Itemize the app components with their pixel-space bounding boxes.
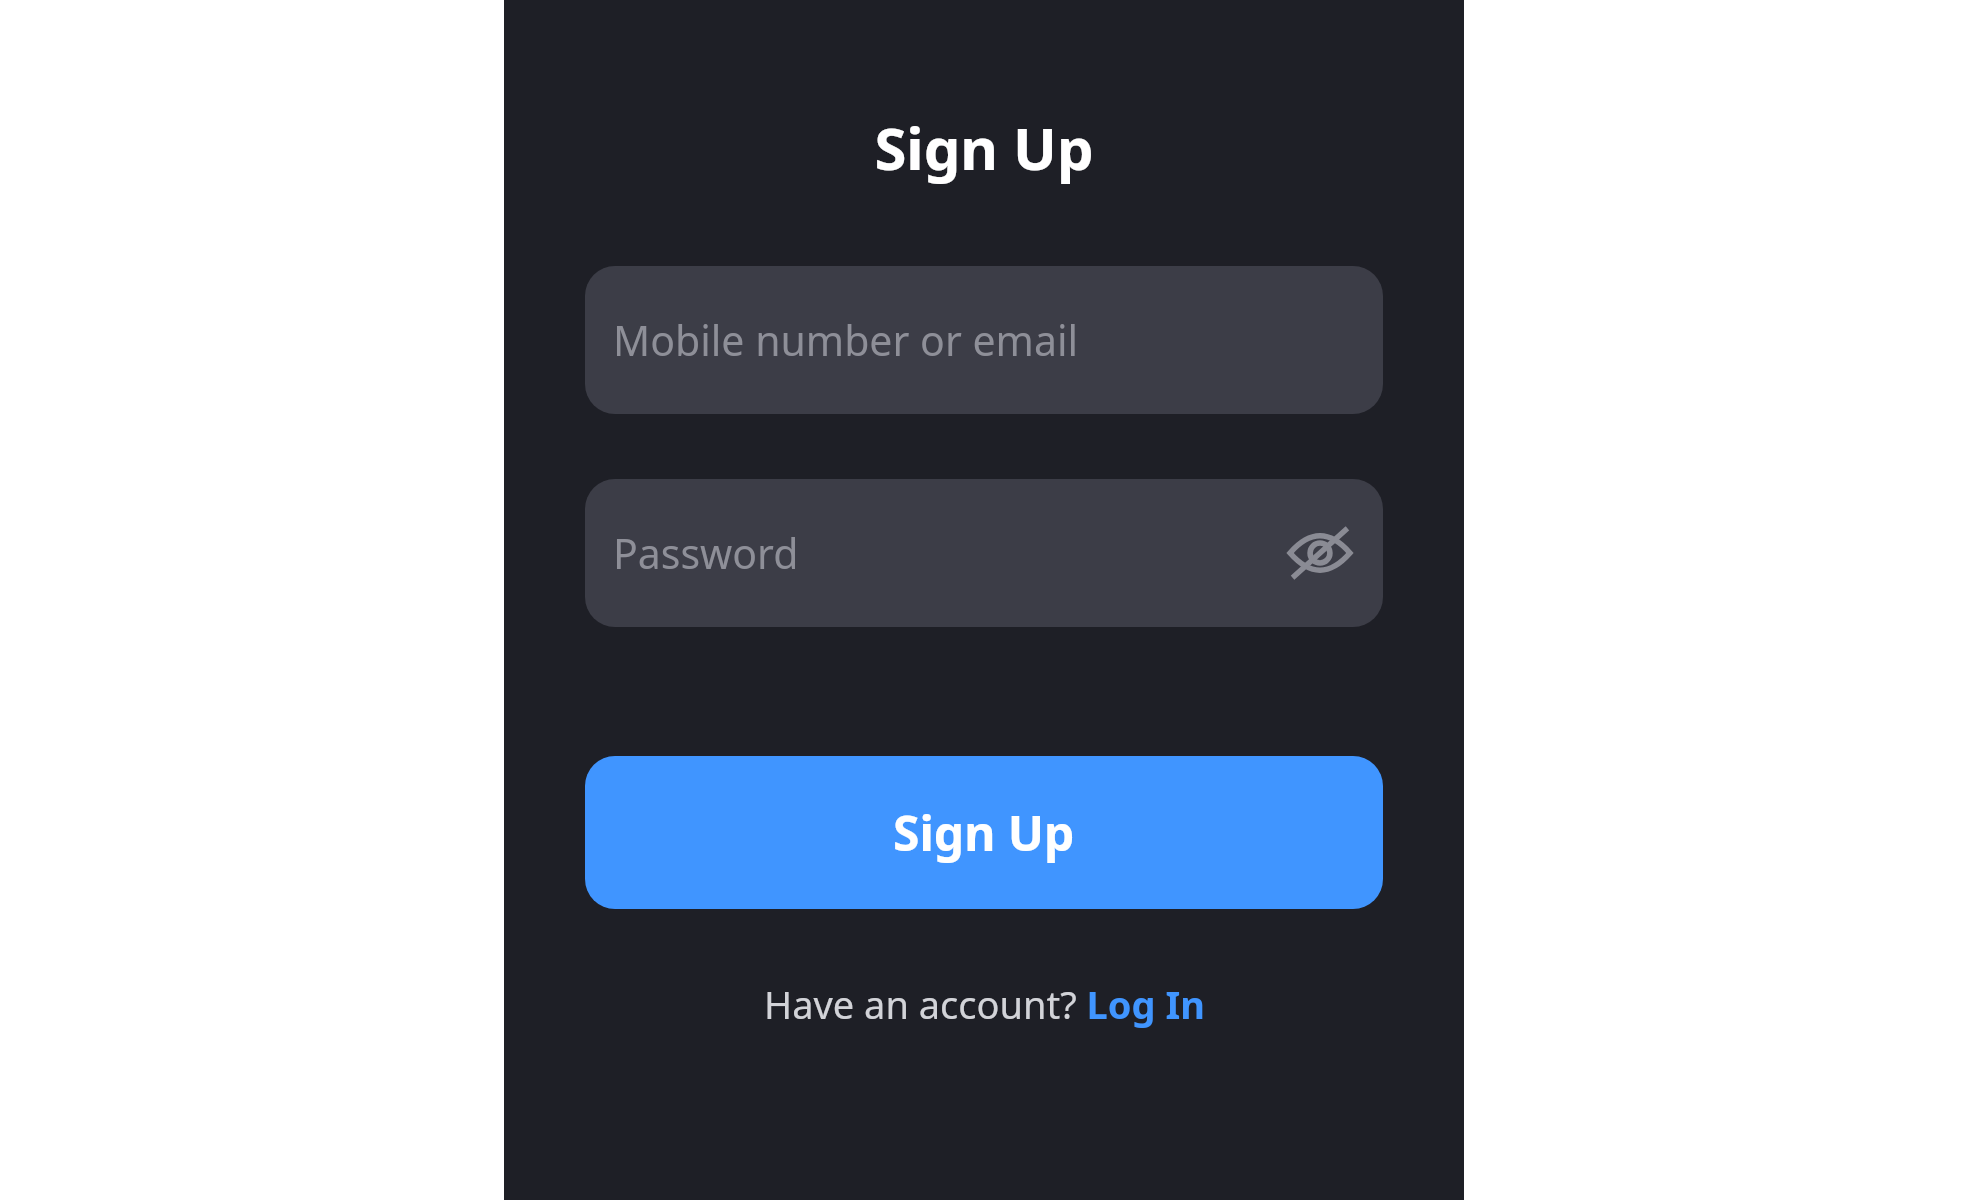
staticText: Mobile number or email [613, 312, 1079, 368]
staticText: Have an account? Log In [764, 978, 1205, 1030]
staticText: Password [613, 525, 799, 581]
button[interactable]: Password [585, 479, 1383, 627]
button[interactable]: Mobile number or email [585, 266, 1383, 414]
staticText: Sign Up [893, 800, 1075, 865]
button[interactable]: Show password [1283, 516, 1357, 590]
button[interactable]: Have an account? Log In [752, 972, 1217, 1036]
button[interactable]: Sign Up [585, 756, 1383, 909]
staticText: Sign Up [874, 108, 1094, 187]
